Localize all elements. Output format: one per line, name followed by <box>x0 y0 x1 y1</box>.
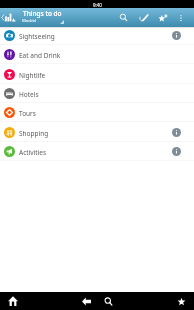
button[interactable]: Shopping <box>0 123 194 142</box>
button[interactable]: Favorites <box>172 292 190 310</box>
button[interactable]: Search <box>99 292 117 310</box>
button[interactable]: Sightseeing <box>0 27 194 45</box>
button[interactable]: Eat and Drink <box>0 45 194 64</box>
button[interactable]: Home <box>4 292 22 310</box>
button[interactable]: More options <box>171 8 190 27</box>
staticText: Nightlife <box>19 71 46 80</box>
button[interactable]: Info <box>172 147 181 156</box>
button[interactable]: Search <box>114 8 133 27</box>
staticText: Things to do <box>23 9 62 18</box>
staticText: Shopping <box>19 129 49 138</box>
button[interactable]: Hotels <box>0 84 194 103</box>
staticText: 9:40 <box>93 2 102 8</box>
button[interactable]: Info <box>172 128 181 137</box>
button[interactable]: Back <box>77 292 95 310</box>
staticText: Sightseeing <box>19 32 55 41</box>
button[interactable]: Tours <box>0 103 194 122</box>
button[interactable]: Back <box>0 8 21 27</box>
staticText: Eat and Drink <box>19 51 61 60</box>
button[interactable]: Info <box>172 31 181 40</box>
staticText: Activities <box>19 148 47 157</box>
staticText: Hotels <box>19 90 39 99</box>
staticText: Tours <box>19 109 36 118</box>
staticText: Madrid <box>22 18 37 24</box>
button[interactable]: Edit <box>134 8 153 27</box>
button[interactable]: Activities <box>0 142 194 161</box>
button[interactable]: Add to favorites <box>153 8 172 27</box>
button[interactable]: Nightlife <box>0 65 194 84</box>
